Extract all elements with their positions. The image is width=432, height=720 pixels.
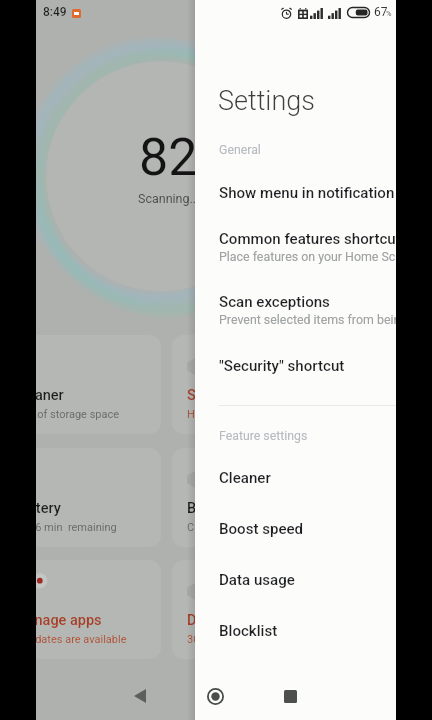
button[interactable]: Scan exceptions	[195, 279, 396, 323]
staticText: 8:49	[43, 5, 67, 19]
staticText: 1h 56 min remaining	[36, 521, 117, 534]
button[interactable]: Data usage	[195, 557, 396, 601]
staticText: Cleaner	[219, 469, 271, 487]
staticText: 67	[374, 5, 388, 19]
staticText: Settings	[218, 85, 315, 117]
button[interactable]: Data usage	[172, 560, 334, 659]
staticText: "Security" shortcut	[219, 357, 345, 375]
staticText: Feature settings	[219, 429, 308, 443]
staticText: Place features on your Home Scre	[219, 249, 396, 264]
staticText: Boost speed	[219, 520, 304, 538]
button[interactable]: Battery	[36, 448, 161, 547]
staticText: 82	[139, 127, 198, 188]
staticText: Boost speed	[187, 500, 268, 517]
button[interactable]: Manage apps	[36, 560, 161, 659]
button[interactable]: Security	[172, 335, 334, 434]
button[interactable]: Common features shortcuts	[195, 216, 396, 260]
staticText: Common features shortcuts	[219, 230, 396, 248]
staticText: General	[219, 143, 261, 157]
staticText: 82% of storage space	[36, 408, 120, 421]
staticText: %	[386, 9, 392, 18]
button[interactable]: Boost speed	[195, 506, 396, 550]
staticText: Cleaner	[36, 387, 64, 404]
staticText: Data usage	[219, 571, 295, 589]
button[interactable]: Cleaner	[36, 335, 161, 434]
staticText: Blocklist	[219, 622, 278, 640]
staticText: Data usage	[187, 612, 260, 629]
button[interactable]: "Security" shortcut	[195, 343, 396, 387]
button[interactable]: Blocklist	[195, 608, 396, 652]
button[interactable]: Recents	[275, 681, 305, 711]
staticText: Clean memory	[187, 521, 258, 534]
staticText: Show menu in notification sh	[219, 184, 396, 202]
staticText: Prevent selected items from being	[219, 312, 396, 327]
button[interactable]: Boost speed	[172, 448, 334, 547]
staticText: Battery	[36, 500, 61, 517]
button[interactable]: Cleaner	[195, 455, 396, 499]
staticText: Scan exceptions	[219, 293, 330, 311]
button[interactable]: Home	[200, 681, 230, 711]
button[interactable]: Show menu in notification sh	[195, 170, 396, 214]
staticText: Scanning...	[138, 191, 200, 206]
staticText: Manage apps	[36, 612, 102, 629]
staticText: 302 MB used	[187, 633, 252, 646]
staticText: 4 updates are available	[36, 633, 127, 646]
staticText: Have a check	[187, 408, 253, 421]
button[interactable]: Back	[125, 681, 155, 711]
staticText: Security	[187, 387, 240, 404]
